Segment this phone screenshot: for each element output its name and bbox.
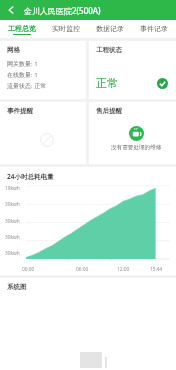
staticText: 事件记录 bbox=[140, 24, 168, 33]
button[interactable]: 事件提醒 bbox=[0, 102, 86, 164]
staticText: 事件提醒 bbox=[7, 107, 33, 115]
staticText: 06:00 bbox=[76, 266, 89, 273]
staticText: 12:00 bbox=[117, 266, 130, 273]
staticText: 30kwh bbox=[5, 201, 20, 208]
staticText: 24小时总耗电量 bbox=[7, 172, 54, 181]
staticText: 金川人民医院2(500A) bbox=[24, 5, 101, 16]
staticText: 工程总览 bbox=[8, 24, 36, 33]
staticText: 正常 bbox=[96, 76, 118, 90]
button[interactable]: 系统图 bbox=[0, 278, 176, 370]
staticText: 系统图 bbox=[7, 283, 27, 291]
staticText: 网格 bbox=[7, 46, 20, 54]
button[interactable]: Back bbox=[0, 0, 20, 20]
staticText: 00:00 bbox=[22, 266, 35, 273]
staticText: 30kwh bbox=[5, 218, 20, 225]
button[interactable]: 事件记录 bbox=[132, 20, 176, 38]
staticText: 没有需要处理的维修 bbox=[111, 144, 162, 151]
staticText: 在线数量: 1 bbox=[7, 71, 38, 79]
button[interactable]: 工程总览 bbox=[0, 20, 44, 38]
button[interactable]: 售后提醒 bbox=[89, 102, 176, 164]
staticText: 数据记录 bbox=[96, 24, 124, 33]
staticText: 19kwh bbox=[5, 185, 20, 192]
button[interactable]: 实时监控 bbox=[44, 20, 88, 38]
staticText: 售后提醒 bbox=[96, 107, 122, 115]
staticText: 流量状态: 正常 bbox=[7, 82, 47, 90]
button[interactable]: 24小时总耗电量 bbox=[0, 167, 176, 275]
staticText: 30kwh bbox=[5, 234, 20, 241]
staticText: 30kwh bbox=[5, 250, 20, 257]
staticText: 工程状态 bbox=[96, 46, 122, 54]
staticText: 网关数量: 1 bbox=[7, 60, 38, 68]
staticText: 实时监控 bbox=[52, 24, 80, 33]
button[interactable]: 网格 bbox=[0, 41, 86, 99]
staticText: 15:44 bbox=[150, 266, 163, 273]
button[interactable]: 工程状态 bbox=[89, 41, 176, 99]
button[interactable]: 数据记录 bbox=[88, 20, 132, 38]
